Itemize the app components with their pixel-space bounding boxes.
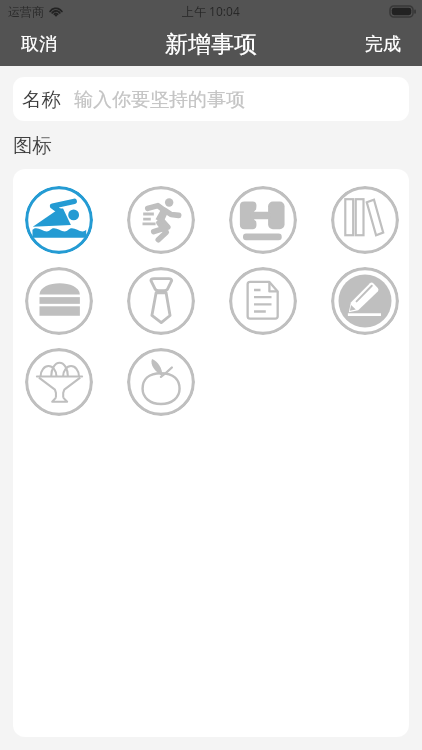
button[interactable]: Writing: [331, 267, 399, 335]
button[interactable]: Document: [229, 267, 297, 335]
button[interactable]: Running: [127, 186, 195, 254]
button[interactable]: Work: [127, 267, 195, 335]
staticText: 新增事项: [165, 30, 257, 59]
button[interactable]: Swimming: [25, 186, 93, 254]
staticText: 输入你要坚持的事项: [74, 88, 245, 112]
staticText: 运营商: [8, 4, 44, 19]
staticText: 图标: [13, 133, 52, 158]
button[interactable]: Fruit: [127, 348, 195, 416]
button[interactable]: 名称: [13, 77, 409, 121]
button[interactable]: Workout: [229, 186, 297, 254]
button[interactable]: Reading: [331, 186, 399, 254]
button[interactable]: 完成: [352, 27, 414, 62]
staticText: 完成: [365, 33, 401, 56]
button[interactable]: Food: [25, 267, 93, 335]
staticText: 名称: [22, 87, 61, 112]
button[interactable]: Dessert: [25, 348, 93, 416]
button[interactable]: 取消: [8, 27, 70, 62]
staticText: 取消: [21, 33, 57, 56]
staticText: 上午 10:04: [182, 3, 240, 19]
